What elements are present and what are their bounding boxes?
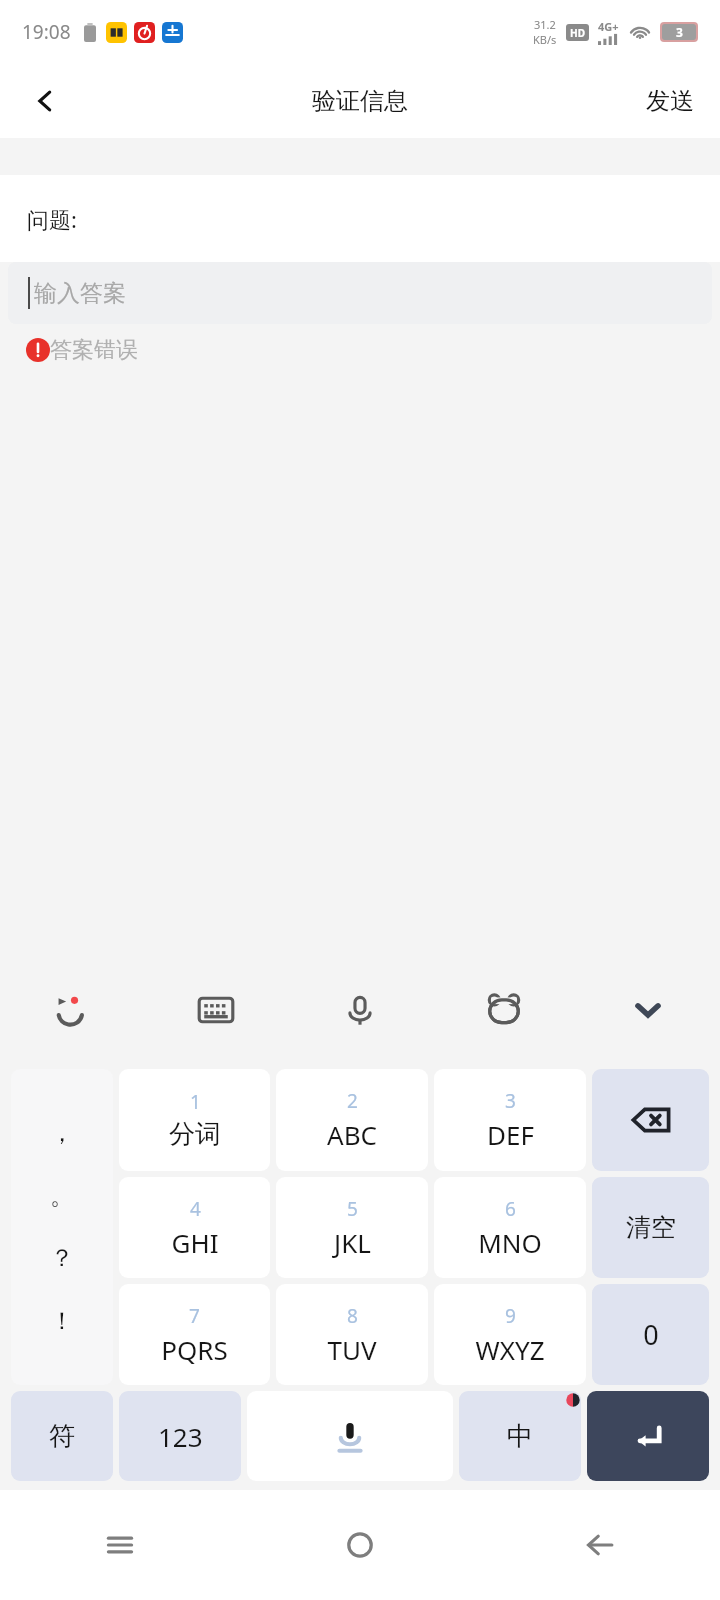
- staticText: 3: [505, 1088, 516, 1114]
- button[interactable]: 0: [592, 1284, 709, 1385]
- staticText: 31.2: [534, 17, 556, 32]
- staticText: 6: [505, 1196, 516, 1222]
- staticText: ？: [50, 1243, 74, 1273]
- button[interactable]: 8: [276, 1284, 428, 1385]
- button[interactable]: 发送: [620, 64, 720, 138]
- staticText: 答案错误: [50, 336, 138, 364]
- staticText: ABC: [327, 1117, 377, 1152]
- staticText: DEF: [487, 1117, 534, 1152]
- button[interactable]: 2: [276, 1069, 428, 1171]
- button[interactable]: 5: [276, 1177, 428, 1278]
- staticText: 验证信息: [312, 86, 408, 116]
- button[interactable]: 符: [11, 1391, 113, 1481]
- button[interactable]: 123: [119, 1391, 241, 1481]
- staticText: ，: [50, 1118, 74, 1148]
- staticText: 3: [676, 24, 683, 40]
- button[interactable]: ，: [11, 1069, 113, 1385]
- staticText: 1: [190, 1089, 201, 1115]
- button[interactable]: 3: [434, 1069, 586, 1171]
- other: Backspace: [592, 1069, 709, 1171]
- button[interactable]: Back: [480, 1490, 720, 1600]
- staticText: KB/s: [533, 32, 557, 47]
- button[interactable]: Keyboard: [144, 960, 288, 1060]
- staticText: 123: [158, 1419, 203, 1454]
- staticText: 0: [643, 1316, 659, 1353]
- button[interactable]: 9: [434, 1284, 586, 1385]
- staticText: ！: [50, 1306, 74, 1336]
- button[interactable]: Back: [0, 64, 90, 138]
- staticText: HD: [570, 26, 585, 40]
- button[interactable]: Hide keyboard: [576, 960, 720, 1060]
- staticText: 分词: [169, 1118, 221, 1151]
- staticText: MNO: [478, 1225, 542, 1260]
- button[interactable]: 4: [119, 1177, 270, 1278]
- button[interactable]: Emoji: [0, 960, 144, 1060]
- button[interactable]: 输入答案: [8, 262, 712, 324]
- button[interactable]: Enter: [587, 1391, 709, 1481]
- staticText: 清空: [626, 1212, 676, 1243]
- button[interactable]: Home: [240, 1490, 480, 1600]
- staticText: 5: [347, 1196, 358, 1222]
- staticText: 7: [189, 1303, 200, 1329]
- staticText: 4G+: [598, 19, 619, 34]
- staticText: 。: [50, 1181, 74, 1211]
- button[interactable]: 7: [119, 1284, 270, 1385]
- staticText: 8: [347, 1303, 358, 1329]
- button[interactable]: Backspace: [592, 1069, 709, 1171]
- staticText: PQRS: [161, 1332, 228, 1367]
- staticText: GHI: [171, 1225, 219, 1260]
- staticText: 符: [49, 1420, 75, 1453]
- staticText: 中: [507, 1420, 533, 1453]
- button[interactable]: 清空: [592, 1177, 709, 1278]
- staticText: 问题:: [27, 204, 77, 234]
- button[interactable]: 中: [459, 1391, 581, 1481]
- staticText: 输入答案: [34, 279, 126, 308]
- staticText: 9: [505, 1303, 516, 1329]
- staticText: TUV: [327, 1332, 377, 1367]
- button[interactable]: Voice input: [288, 960, 432, 1060]
- staticText: 19:08: [22, 19, 71, 45]
- staticText: WXYZ: [475, 1332, 545, 1367]
- button[interactable]: Baidu input: [432, 960, 576, 1060]
- button[interactable]: Space: [247, 1391, 453, 1481]
- staticText: JKL: [334, 1225, 371, 1260]
- button[interactable]: 6: [434, 1177, 586, 1278]
- staticText: 2: [347, 1088, 358, 1114]
- button[interactable]: 1: [119, 1069, 270, 1171]
- button[interactable]: Recents: [0, 1490, 240, 1600]
- staticText: 发送: [646, 86, 694, 116]
- staticText: 4: [190, 1196, 201, 1222]
